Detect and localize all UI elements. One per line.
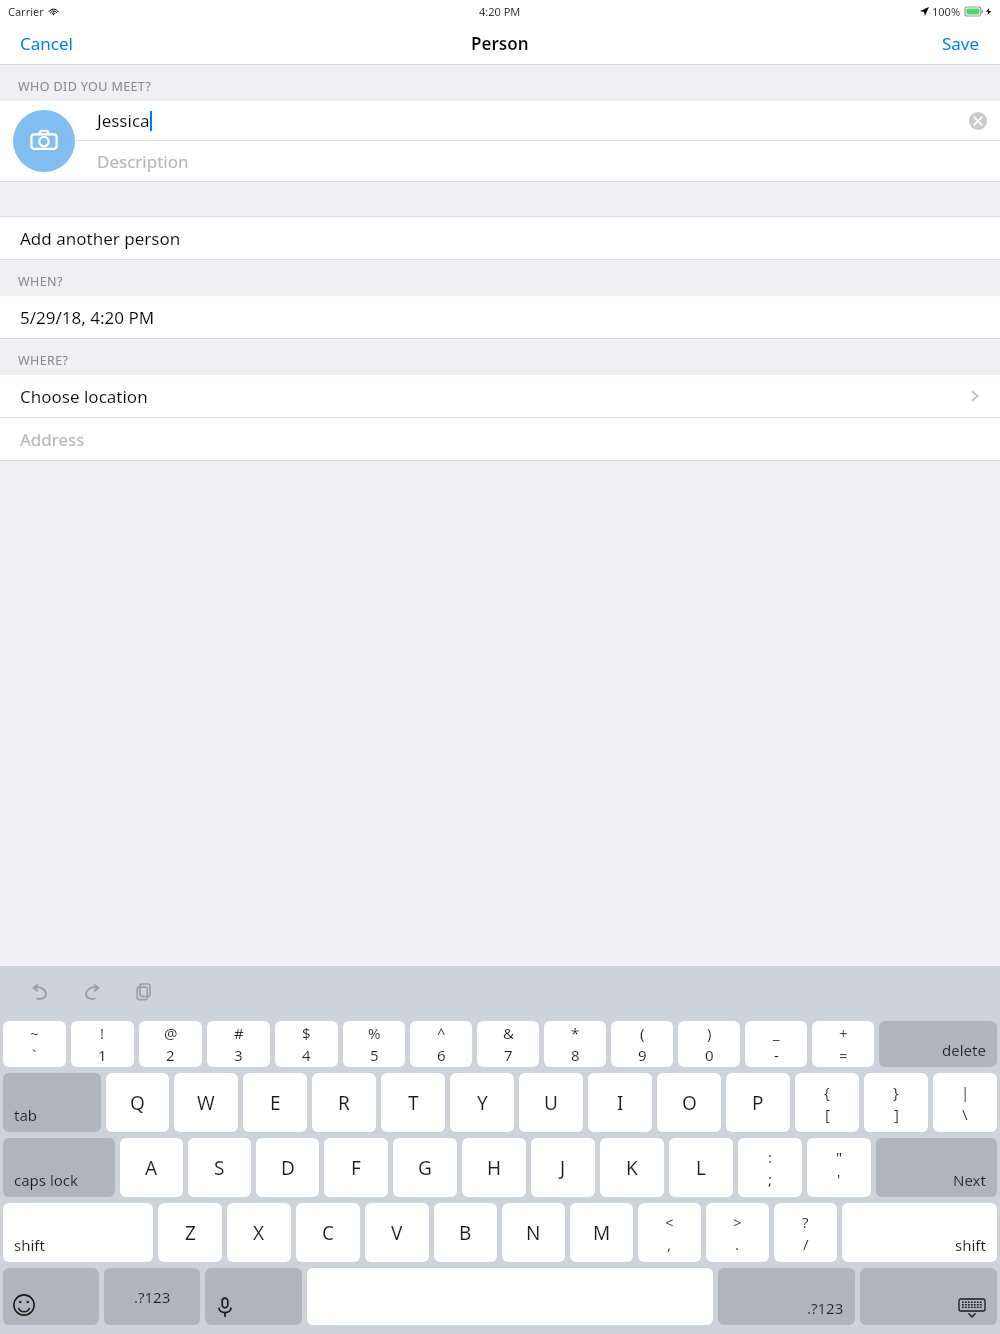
button[interactable]: Y: [450, 1073, 514, 1132]
button[interactable]: Add photo: [13, 110, 75, 172]
button[interactable]: R: [312, 1073, 376, 1132]
button[interactable]: L: [669, 1138, 733, 1197]
staticText: U: [544, 1090, 558, 1116]
button[interactable]: C: [296, 1203, 360, 1262]
button[interactable]: ): [678, 1021, 740, 1067]
staticText: H: [487, 1155, 502, 1181]
button[interactable]: Cancel: [0, 22, 93, 64]
button[interactable]: B: [434, 1203, 497, 1262]
button[interactable]: Save: [922, 22, 1000, 64]
staticText: Carrier: [8, 4, 44, 19]
button[interactable]: ^: [410, 1021, 472, 1067]
button[interactable]: tab: [3, 1073, 101, 1132]
button[interactable]: Q: [106, 1073, 169, 1132]
button[interactable]: E: [243, 1073, 307, 1132]
staticText: 7: [504, 1045, 513, 1065]
button[interactable]: +: [812, 1021, 874, 1067]
button[interactable]: I: [588, 1073, 652, 1132]
button[interactable]: F: [324, 1138, 388, 1197]
button[interactable]: &: [477, 1021, 539, 1067]
button[interactable]: _: [745, 1021, 807, 1067]
staticText: J: [560, 1155, 566, 1181]
button[interactable]: shift: [842, 1203, 997, 1262]
button[interactable]: %: [343, 1021, 405, 1067]
staticText: Description: [97, 150, 189, 173]
button[interactable]: Add another person: [0, 217, 1000, 259]
button[interactable]: delete: [879, 1021, 997, 1067]
button[interactable]: .?123: [104, 1268, 200, 1325]
button[interactable]: !: [71, 1021, 134, 1067]
staticText: V: [391, 1220, 403, 1246]
button[interactable]: caps lock: [3, 1138, 115, 1197]
button[interactable]: N: [502, 1203, 565, 1262]
button[interactable]: Paste: [124, 972, 164, 1012]
button[interactable]: <: [638, 1203, 701, 1262]
button[interactable]: (: [611, 1021, 673, 1067]
button[interactable]: 5/29/18, 4:20 PM: [0, 296, 1000, 338]
button[interactable]: V: [365, 1203, 429, 1262]
staticText: ): [707, 1023, 712, 1043]
button[interactable]: Next: [876, 1138, 997, 1197]
button[interactable]: *: [544, 1021, 606, 1067]
button[interactable]: ~: [3, 1021, 66, 1067]
staticText: }: [893, 1082, 899, 1102]
button[interactable]: >: [706, 1203, 769, 1262]
staticText: K: [626, 1155, 638, 1181]
staticText: 6: [437, 1045, 446, 1065]
staticText: B: [459, 1220, 472, 1246]
staticText: @: [164, 1023, 178, 1043]
button[interactable]: :: [738, 1138, 802, 1197]
staticText: _: [773, 1023, 780, 1043]
button[interactable]: $: [275, 1021, 338, 1067]
staticText: Z: [185, 1220, 196, 1246]
staticText: ~: [30, 1023, 39, 1043]
button[interactable]: M: [570, 1203, 633, 1262]
button[interactable]: S: [188, 1138, 251, 1197]
button[interactable]: #: [207, 1021, 270, 1067]
button[interactable]: O: [657, 1073, 721, 1132]
button[interactable]: ?: [774, 1203, 837, 1262]
button[interactable]: D: [256, 1138, 319, 1197]
button[interactable]: |: [933, 1073, 997, 1132]
button[interactable]: @: [139, 1021, 202, 1067]
staticText: 8: [571, 1045, 580, 1065]
button[interactable]: X: [227, 1203, 291, 1262]
staticText: 5/29/18, 4:20 PM: [20, 306, 155, 329]
staticText: WHERE?: [18, 352, 69, 369]
button[interactable]: ": [807, 1138, 871, 1197]
button[interactable]: H: [462, 1138, 526, 1197]
button[interactable]: P: [726, 1073, 790, 1132]
button[interactable]: .?123: [718, 1268, 855, 1325]
staticText: Person: [471, 32, 529, 55]
staticText: O: [682, 1090, 697, 1116]
button[interactable]: U: [519, 1073, 583, 1132]
staticText: M: [593, 1220, 611, 1246]
button[interactable]: T: [381, 1073, 445, 1132]
button[interactable]: A: [120, 1138, 183, 1197]
button[interactable]: Dictation: [205, 1268, 302, 1325]
button[interactable]: Address: [0, 418, 1000, 460]
button[interactable]: shift: [3, 1203, 153, 1262]
button[interactable]: W: [174, 1073, 238, 1132]
staticText: .?123: [134, 1287, 171, 1307]
button[interactable]: Z: [158, 1203, 222, 1262]
button[interactable]: Undo: [20, 972, 60, 1012]
button[interactable]: Hide keyboard: [860, 1268, 997, 1325]
staticText: C: [322, 1220, 335, 1246]
staticText: P: [752, 1090, 764, 1116]
button[interactable]: {: [795, 1073, 859, 1132]
staticText: <: [665, 1212, 674, 1232]
staticText: S: [214, 1155, 225, 1181]
button[interactable]: J: [531, 1138, 595, 1197]
button[interactable]: K: [600, 1138, 664, 1197]
button[interactable]: Redo: [72, 972, 112, 1012]
staticText: :: [768, 1147, 773, 1167]
staticText: W: [197, 1090, 215, 1116]
button[interactable]: }: [864, 1073, 928, 1132]
button[interactable]: Clear text: [968, 111, 988, 131]
button[interactable]: G: [393, 1138, 457, 1197]
staticText: shift: [955, 1235, 986, 1255]
button[interactable]: Choose location: [0, 375, 1000, 417]
button[interactable]: Emoji: [3, 1268, 99, 1325]
